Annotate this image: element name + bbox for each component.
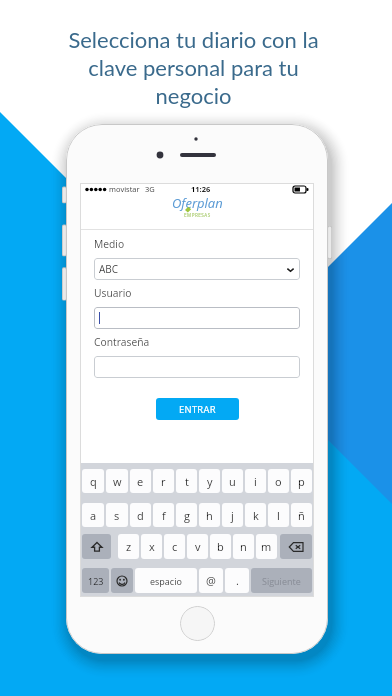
button[interactable]: s: [106, 503, 128, 527]
button[interactable]: a: [82, 503, 104, 527]
button[interactable]: ENTRAR: [156, 398, 239, 420]
button[interactable]: Mayusculas: [82, 534, 111, 559]
button[interactable]: .: [225, 568, 249, 593]
button[interactable]: r: [153, 469, 174, 493]
staticText: 11:26: [191, 184, 211, 194]
button[interactable]: [94, 307, 300, 329]
staticText: z: [126, 539, 132, 554]
staticText: d: [137, 508, 144, 523]
staticText: y: [207, 474, 213, 489]
button[interactable]: q: [82, 469, 104, 493]
staticText: EMPRESAS: [184, 212, 211, 218]
staticText: o: [275, 474, 282, 489]
button[interactable]: 123: [82, 568, 109, 593]
staticText: v: [195, 539, 201, 554]
staticText: p: [298, 474, 305, 489]
staticText: ENTRAR: [179, 403, 216, 416]
button[interactable]: d: [130, 503, 151, 527]
button[interactable]: p: [291, 469, 312, 493]
button[interactable]: h: [199, 503, 220, 527]
staticText: s: [114, 508, 120, 523]
staticText: e: [137, 474, 144, 489]
staticText: Oferplan: [172, 194, 223, 212]
button[interactable]: Borrar: [280, 534, 312, 559]
button[interactable]: Siguiente: [251, 568, 312, 593]
staticText: ñ: [298, 508, 305, 523]
staticText: g: [184, 508, 190, 523]
button[interactable]: l: [268, 503, 289, 527]
button[interactable]: b: [210, 534, 231, 559]
staticText: ABC: [99, 262, 119, 276]
button[interactable]: u: [222, 469, 243, 493]
staticText: a: [90, 508, 97, 523]
staticText: u: [229, 474, 236, 489]
staticText: q: [90, 474, 97, 489]
staticText: x: [149, 539, 155, 554]
button[interactable]: j: [222, 503, 243, 527]
staticText: @: [206, 573, 216, 588]
staticText: h: [206, 508, 213, 523]
staticText: i: [254, 474, 257, 489]
staticText: m: [261, 539, 272, 554]
staticText: t: [185, 474, 189, 489]
button[interactable]: w: [106, 469, 128, 493]
button[interactable]: ABC: [94, 258, 300, 280]
button[interactable]: z: [118, 534, 139, 559]
staticText: l: [277, 508, 280, 523]
button[interactable]: n: [233, 534, 254, 559]
staticText: Contraseña: [94, 335, 150, 349]
button[interactable]: o: [268, 469, 289, 493]
button[interactable]: m: [256, 534, 277, 559]
staticText: w: [113, 474, 122, 489]
staticText: Usuario: [94, 286, 132, 300]
staticText: movistar: [109, 184, 140, 194]
button[interactable]: Emoji: [111, 568, 133, 593]
staticText: c: [172, 539, 178, 554]
staticText: k: [253, 508, 259, 523]
button[interactable]: @: [199, 568, 223, 593]
staticText: Medio: [94, 237, 125, 251]
staticText: n: [240, 539, 247, 554]
button[interactable]: g: [176, 503, 197, 527]
button[interactable]: y: [199, 469, 220, 493]
button[interactable]: espacio: [135, 568, 197, 593]
button[interactable]: t: [176, 469, 197, 493]
button[interactable]: v: [187, 534, 208, 559]
staticText: Selecciona tu diario con la clave person…: [68, 26, 319, 109]
button[interactable]: c: [164, 534, 185, 559]
staticText: r: [161, 474, 166, 489]
button[interactable]: ñ: [291, 503, 312, 527]
button[interactable]: i: [245, 469, 266, 493]
button[interactable]: x: [141, 534, 162, 559]
staticText: Siguiente: [262, 575, 301, 587]
button[interactable]: e: [130, 469, 151, 493]
staticText: f: [162, 508, 166, 523]
staticText: .: [236, 573, 239, 588]
button[interactable]: f: [153, 503, 174, 527]
button[interactable]: k: [245, 503, 266, 527]
staticText: 123: [88, 575, 104, 587]
staticText: espacio: [150, 575, 182, 587]
button[interactable]: [94, 356, 300, 378]
staticText: 3G: [145, 184, 155, 194]
staticText: b: [217, 539, 224, 554]
staticText: j: [231, 508, 234, 523]
